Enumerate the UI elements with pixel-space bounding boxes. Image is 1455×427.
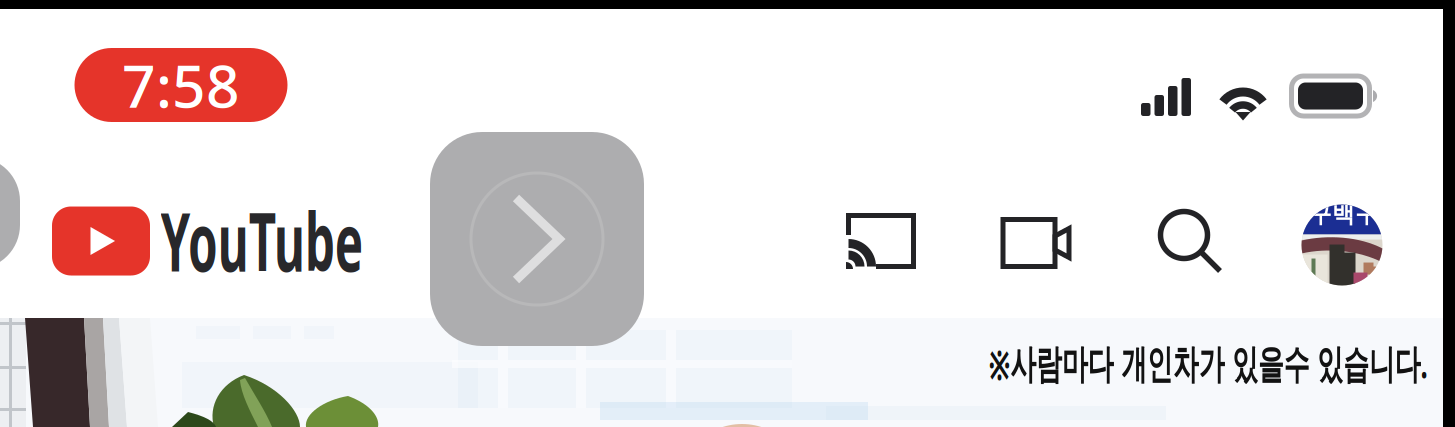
button[interactable]: Search bbox=[1158, 209, 1224, 275]
staticText: 7:58 bbox=[122, 46, 240, 124]
staticText: ※사람마다 개인차가 있을수 있습니다. bbox=[867, 336, 1455, 389]
button[interactable]: Your account bbox=[1301, 204, 1382, 285]
button[interactable]: Cast to device bbox=[846, 213, 916, 269]
button[interactable]: YouTube bbox=[52, 201, 366, 281]
button[interactable]: Create bbox=[1000, 217, 1071, 269]
staticText: 구백구 bbox=[1309, 201, 1378, 228]
staticText: YouTube bbox=[160, 186, 507, 294]
